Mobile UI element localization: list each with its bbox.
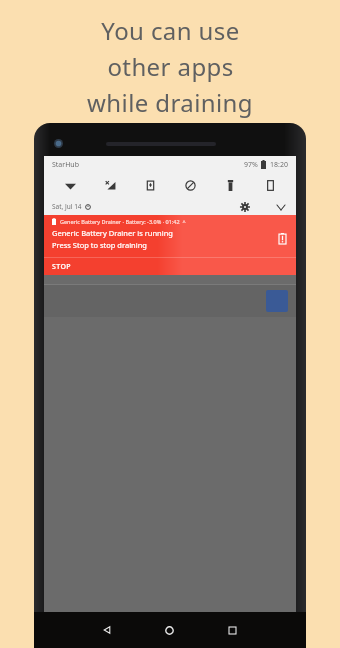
button[interactable]: Battery saver: [130, 173, 170, 198]
staticText: STOP: [52, 262, 72, 272]
staticText: Press Stop to stop draining: [52, 240, 147, 250]
staticText: 97%: [244, 160, 258, 170]
button[interactable]: Home: [138, 612, 201, 648]
staticText: Generic Battery Drainer is running: [52, 228, 173, 238]
staticText: StarHub: [52, 160, 80, 170]
button[interactable]: STOP: [44, 258, 296, 275]
staticText: Sat, Jul 14: [52, 202, 82, 211]
button[interactable]: Flashlight: [210, 173, 250, 198]
button[interactable]: Recents: [201, 612, 264, 648]
staticText: 18:20: [270, 160, 288, 170]
staticText: other apps: [107, 50, 234, 83]
staticText: while draining: [87, 86, 253, 119]
button[interactable]: Settings: [238, 200, 252, 214]
staticText: Generic Battery Drainer · Battery: -3.0%…: [60, 218, 186, 225]
button[interactable]: Wi-Fi: [50, 173, 90, 198]
button[interactable]: Back: [76, 612, 138, 648]
button[interactable]: Mobile data: [90, 173, 130, 198]
button[interactable]: Auto rotate: [250, 173, 290, 198]
button[interactable]: Do not disturb: [170, 173, 210, 198]
staticText: You can use: [101, 14, 240, 47]
button[interactable]: Expand: [274, 200, 288, 214]
button[interactable]: Generic Battery Drainer · Battery: -3.0%…: [44, 215, 296, 275]
